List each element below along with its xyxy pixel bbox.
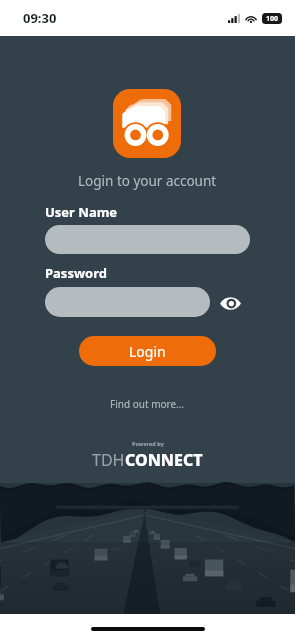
staticText: 100 xyxy=(266,14,279,24)
staticText: 09:30 xyxy=(23,9,57,27)
staticText: User Name xyxy=(45,203,118,221)
button[interactable]: Find out more... xyxy=(104,394,191,414)
staticText: Login to your account xyxy=(78,172,217,190)
button[interactable]: Show password xyxy=(217,290,243,316)
staticText: Password xyxy=(45,264,107,282)
button[interactable]: User Name field xyxy=(45,225,250,254)
staticText: Login xyxy=(129,342,166,361)
staticText: Powered by xyxy=(132,440,164,447)
staticText: Find out more... xyxy=(110,397,185,411)
button[interactable]: Password field xyxy=(45,287,210,317)
button[interactable]: Login xyxy=(79,336,216,366)
staticText: TDH xyxy=(92,449,125,471)
staticText: CONNECT xyxy=(125,449,203,471)
